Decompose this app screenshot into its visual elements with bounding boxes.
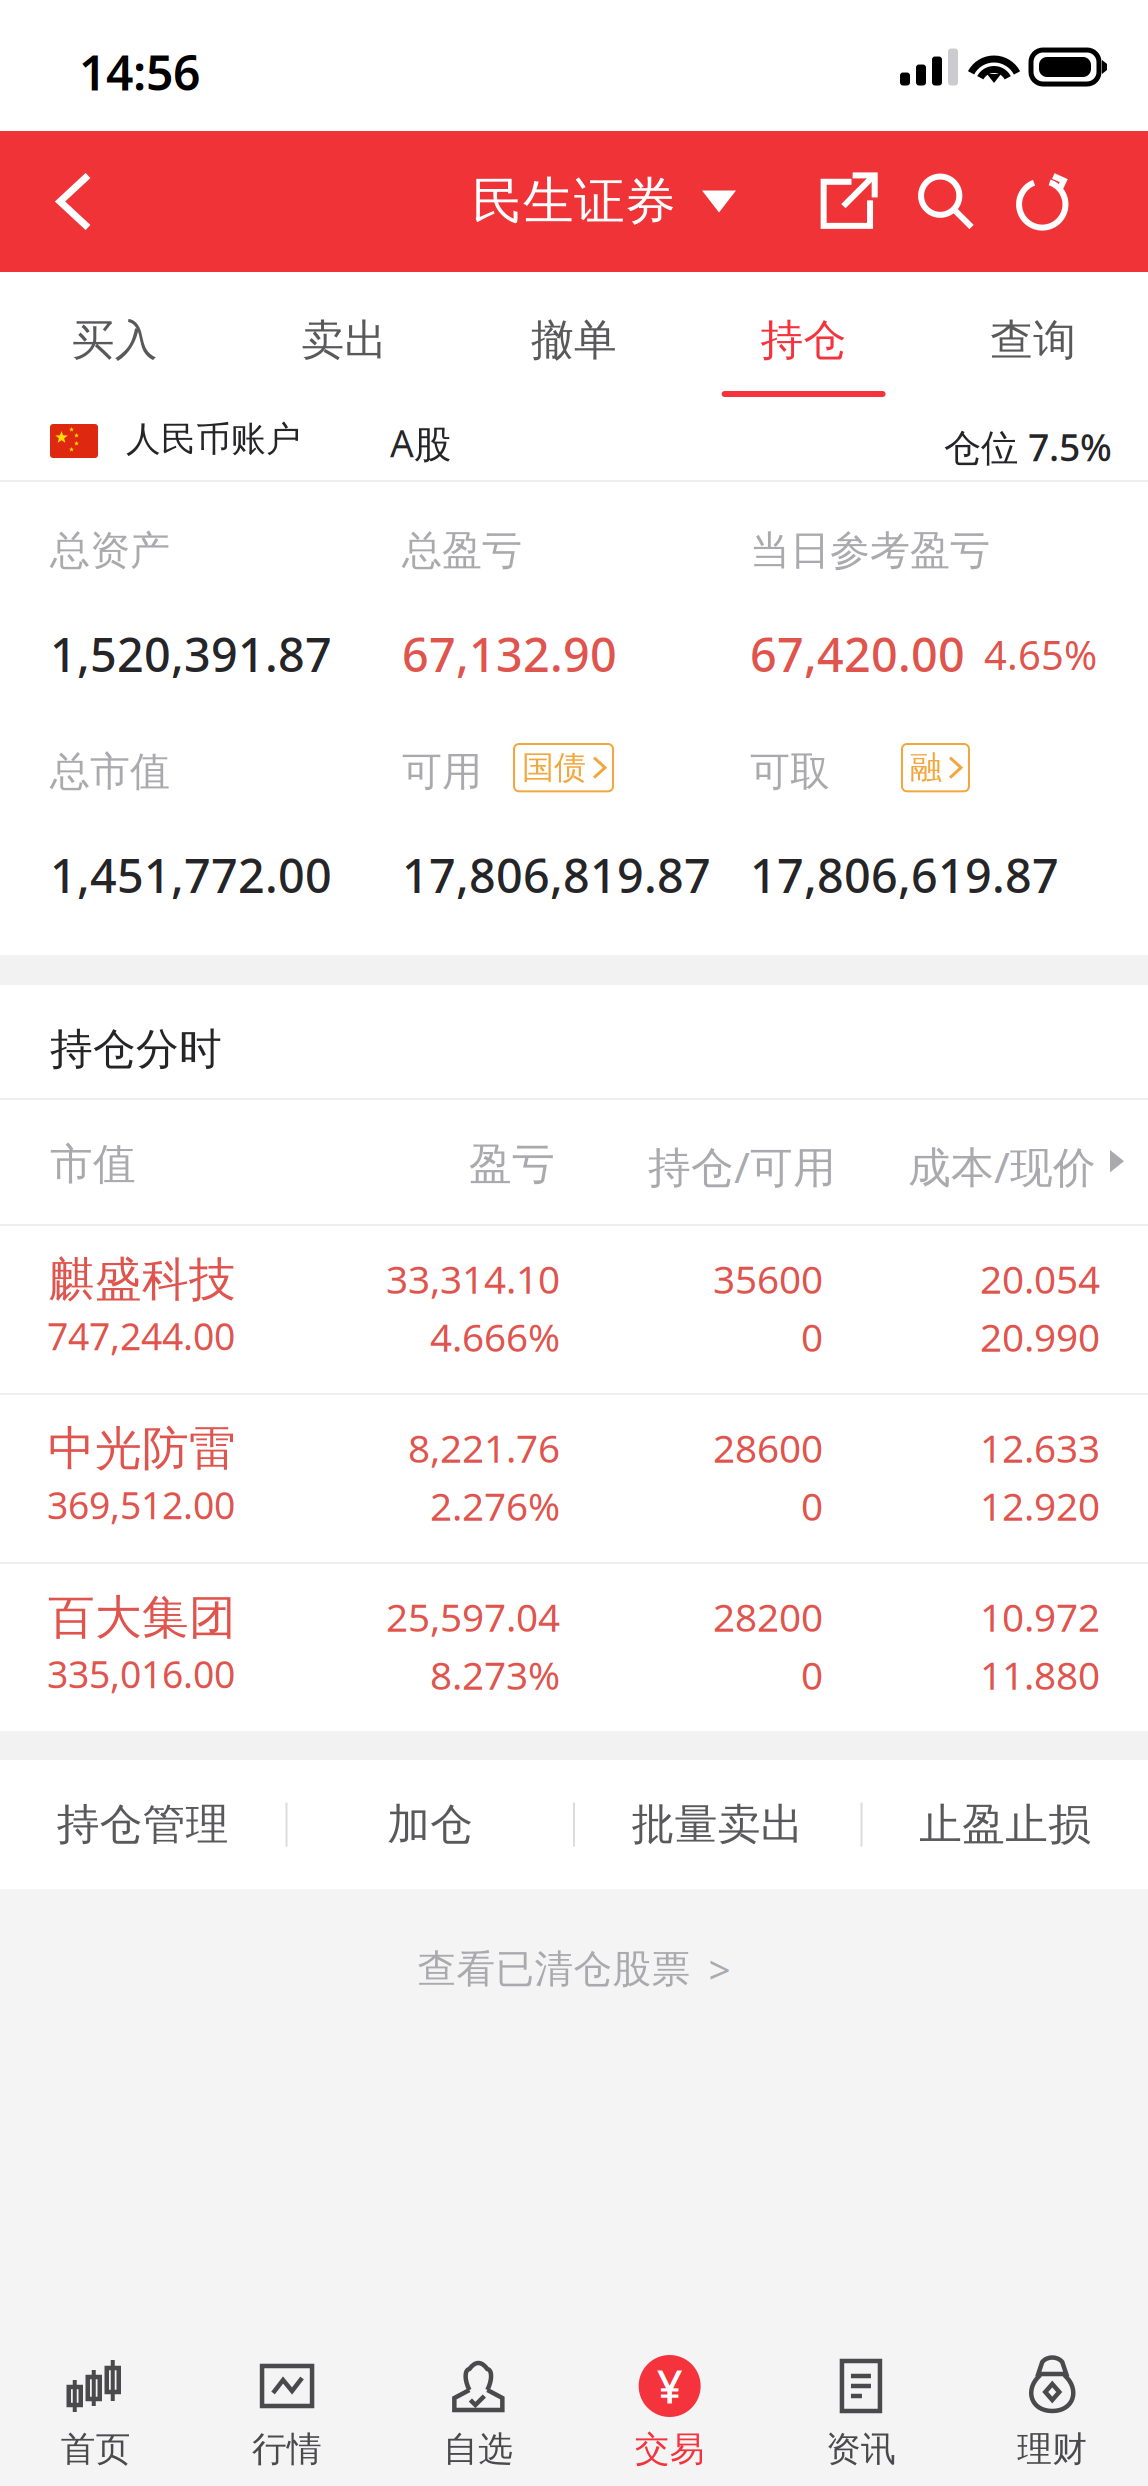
staticText: 麒盛科技: [48, 1251, 236, 1308]
button[interactable]: 国债: [514, 744, 613, 791]
staticText: 17,806,819.87: [402, 844, 711, 906]
button[interactable]: 持仓: [689, 272, 918, 404]
staticText: 可用: [402, 747, 482, 796]
staticText: 0: [801, 1649, 823, 1700]
button[interactable]: 理财: [957, 2260, 1148, 2486]
staticText: 人民币账户: [126, 418, 301, 461]
staticText: 28200: [713, 1591, 823, 1642]
staticText: 67,132.90: [402, 623, 617, 685]
button[interactable]: 融: [902, 744, 969, 791]
button[interactable]: 加仓: [287, 1760, 573, 1889]
staticText: 14:56: [79, 40, 200, 104]
staticText: 8.273%: [430, 1649, 560, 1700]
staticText: 国债: [522, 748, 586, 787]
button[interactable]: 自选: [383, 2260, 574, 2486]
button[interactable]: 批量卖出: [575, 1760, 860, 1889]
staticText: 理财: [1017, 2428, 1087, 2471]
staticText: 1,520,391.87: [50, 623, 332, 685]
staticText: 总盈亏: [402, 526, 522, 575]
staticText: 资讯: [826, 2428, 896, 2471]
staticText: 民生证券: [472, 170, 676, 233]
staticText: 12.920: [980, 1480, 1100, 1531]
staticText: 11.880: [980, 1649, 1100, 1700]
staticText: 持仓分时: [50, 1023, 222, 1075]
staticText: 33,314.10: [386, 1253, 560, 1304]
staticText: 总资产: [50, 526, 170, 575]
staticText: 4.65%: [984, 628, 1097, 681]
staticText: 20.054: [980, 1253, 1100, 1304]
button[interactable]: 撤单: [459, 272, 689, 404]
staticText: 25,597.04: [386, 1591, 560, 1642]
staticText: 0: [801, 1480, 823, 1531]
staticText: 10.972: [980, 1591, 1100, 1642]
button[interactable]: Back: [22, 131, 126, 272]
staticText: 批量卖出: [632, 1798, 804, 1851]
staticText: 加仓: [387, 1798, 473, 1851]
staticText: 总市值: [50, 747, 170, 796]
button[interactable]: Search: [912, 131, 980, 272]
staticText: 融: [910, 748, 942, 787]
staticText: 止盈止损: [919, 1798, 1091, 1851]
button[interactable]: 查询: [918, 272, 1148, 404]
staticText: ¥: [657, 2356, 683, 2416]
staticText: 成本/现价: [908, 1138, 1096, 1195]
button[interactable]: 中光防雷: [0, 1395, 1148, 1562]
staticText: 可取: [750, 747, 830, 796]
button[interactable]: 民生证券: [466, 131, 742, 272]
staticText: 369,512.00: [47, 1480, 235, 1530]
button[interactable]: ¥: [574, 2260, 765, 2486]
staticText: 747,244.00: [47, 1311, 235, 1361]
button[interactable]: 麒盛科技: [0, 1226, 1148, 1393]
staticText: 8,221.76: [408, 1422, 560, 1473]
staticText: 首页: [61, 2428, 131, 2471]
button[interactable]: 卖出: [230, 272, 459, 404]
staticText: 335,016.00: [47, 1649, 235, 1699]
button[interactable]: 百大集团: [0, 1564, 1148, 1731]
button[interactable]: 查看已清仓股票: [0, 1889, 1148, 2049]
staticText: 28600: [713, 1422, 823, 1473]
staticText: 卖出: [301, 314, 387, 366]
staticText: 1,451,772.00: [50, 844, 332, 906]
staticText: 持仓管理: [57, 1798, 229, 1851]
button[interactable]: 首页: [0, 2260, 191, 2486]
staticText: 中光防雷: [48, 1420, 236, 1477]
staticText: 交易: [635, 2428, 705, 2471]
staticText: 行情: [252, 2428, 322, 2471]
staticText: A股: [390, 418, 451, 468]
staticText: >: [708, 1943, 730, 1995]
button[interactable]: 买入: [0, 272, 230, 404]
staticText: 持仓: [761, 314, 847, 366]
button[interactable]: 资讯: [765, 2260, 957, 2486]
staticText: 17,806,619.87: [750, 844, 1059, 906]
staticText: 查询: [990, 314, 1076, 366]
staticText: 67,420.00: [750, 623, 965, 685]
button[interactable]: 止盈止损: [862, 1760, 1148, 1889]
staticText: 查看已清仓股票: [417, 1945, 690, 1993]
button[interactable]: 持仓管理: [0, 1760, 285, 1889]
staticText: 12.633: [980, 1422, 1100, 1473]
staticText: 撤单: [531, 314, 617, 366]
staticText: 自选: [443, 2428, 513, 2471]
staticText: 0: [801, 1311, 823, 1362]
staticText: 仓位 7.5%: [944, 422, 1112, 472]
button[interactable]: 行情: [191, 2260, 383, 2486]
staticText: 20.990: [980, 1311, 1100, 1362]
staticText: 盈亏: [469, 1138, 555, 1190]
staticText: 百大集团: [48, 1589, 236, 1646]
staticText: 当日参考盈亏: [750, 526, 990, 575]
staticText: 持仓/可用: [648, 1138, 836, 1195]
staticText: 2.276%: [430, 1480, 560, 1531]
staticText: 市值: [50, 1138, 136, 1190]
staticText: 买入: [72, 314, 158, 366]
button[interactable]: Refresh: [1010, 131, 1078, 272]
button[interactable]: Share: [814, 131, 882, 272]
staticText: 4.666%: [430, 1311, 560, 1362]
staticText: 35600: [713, 1253, 823, 1304]
